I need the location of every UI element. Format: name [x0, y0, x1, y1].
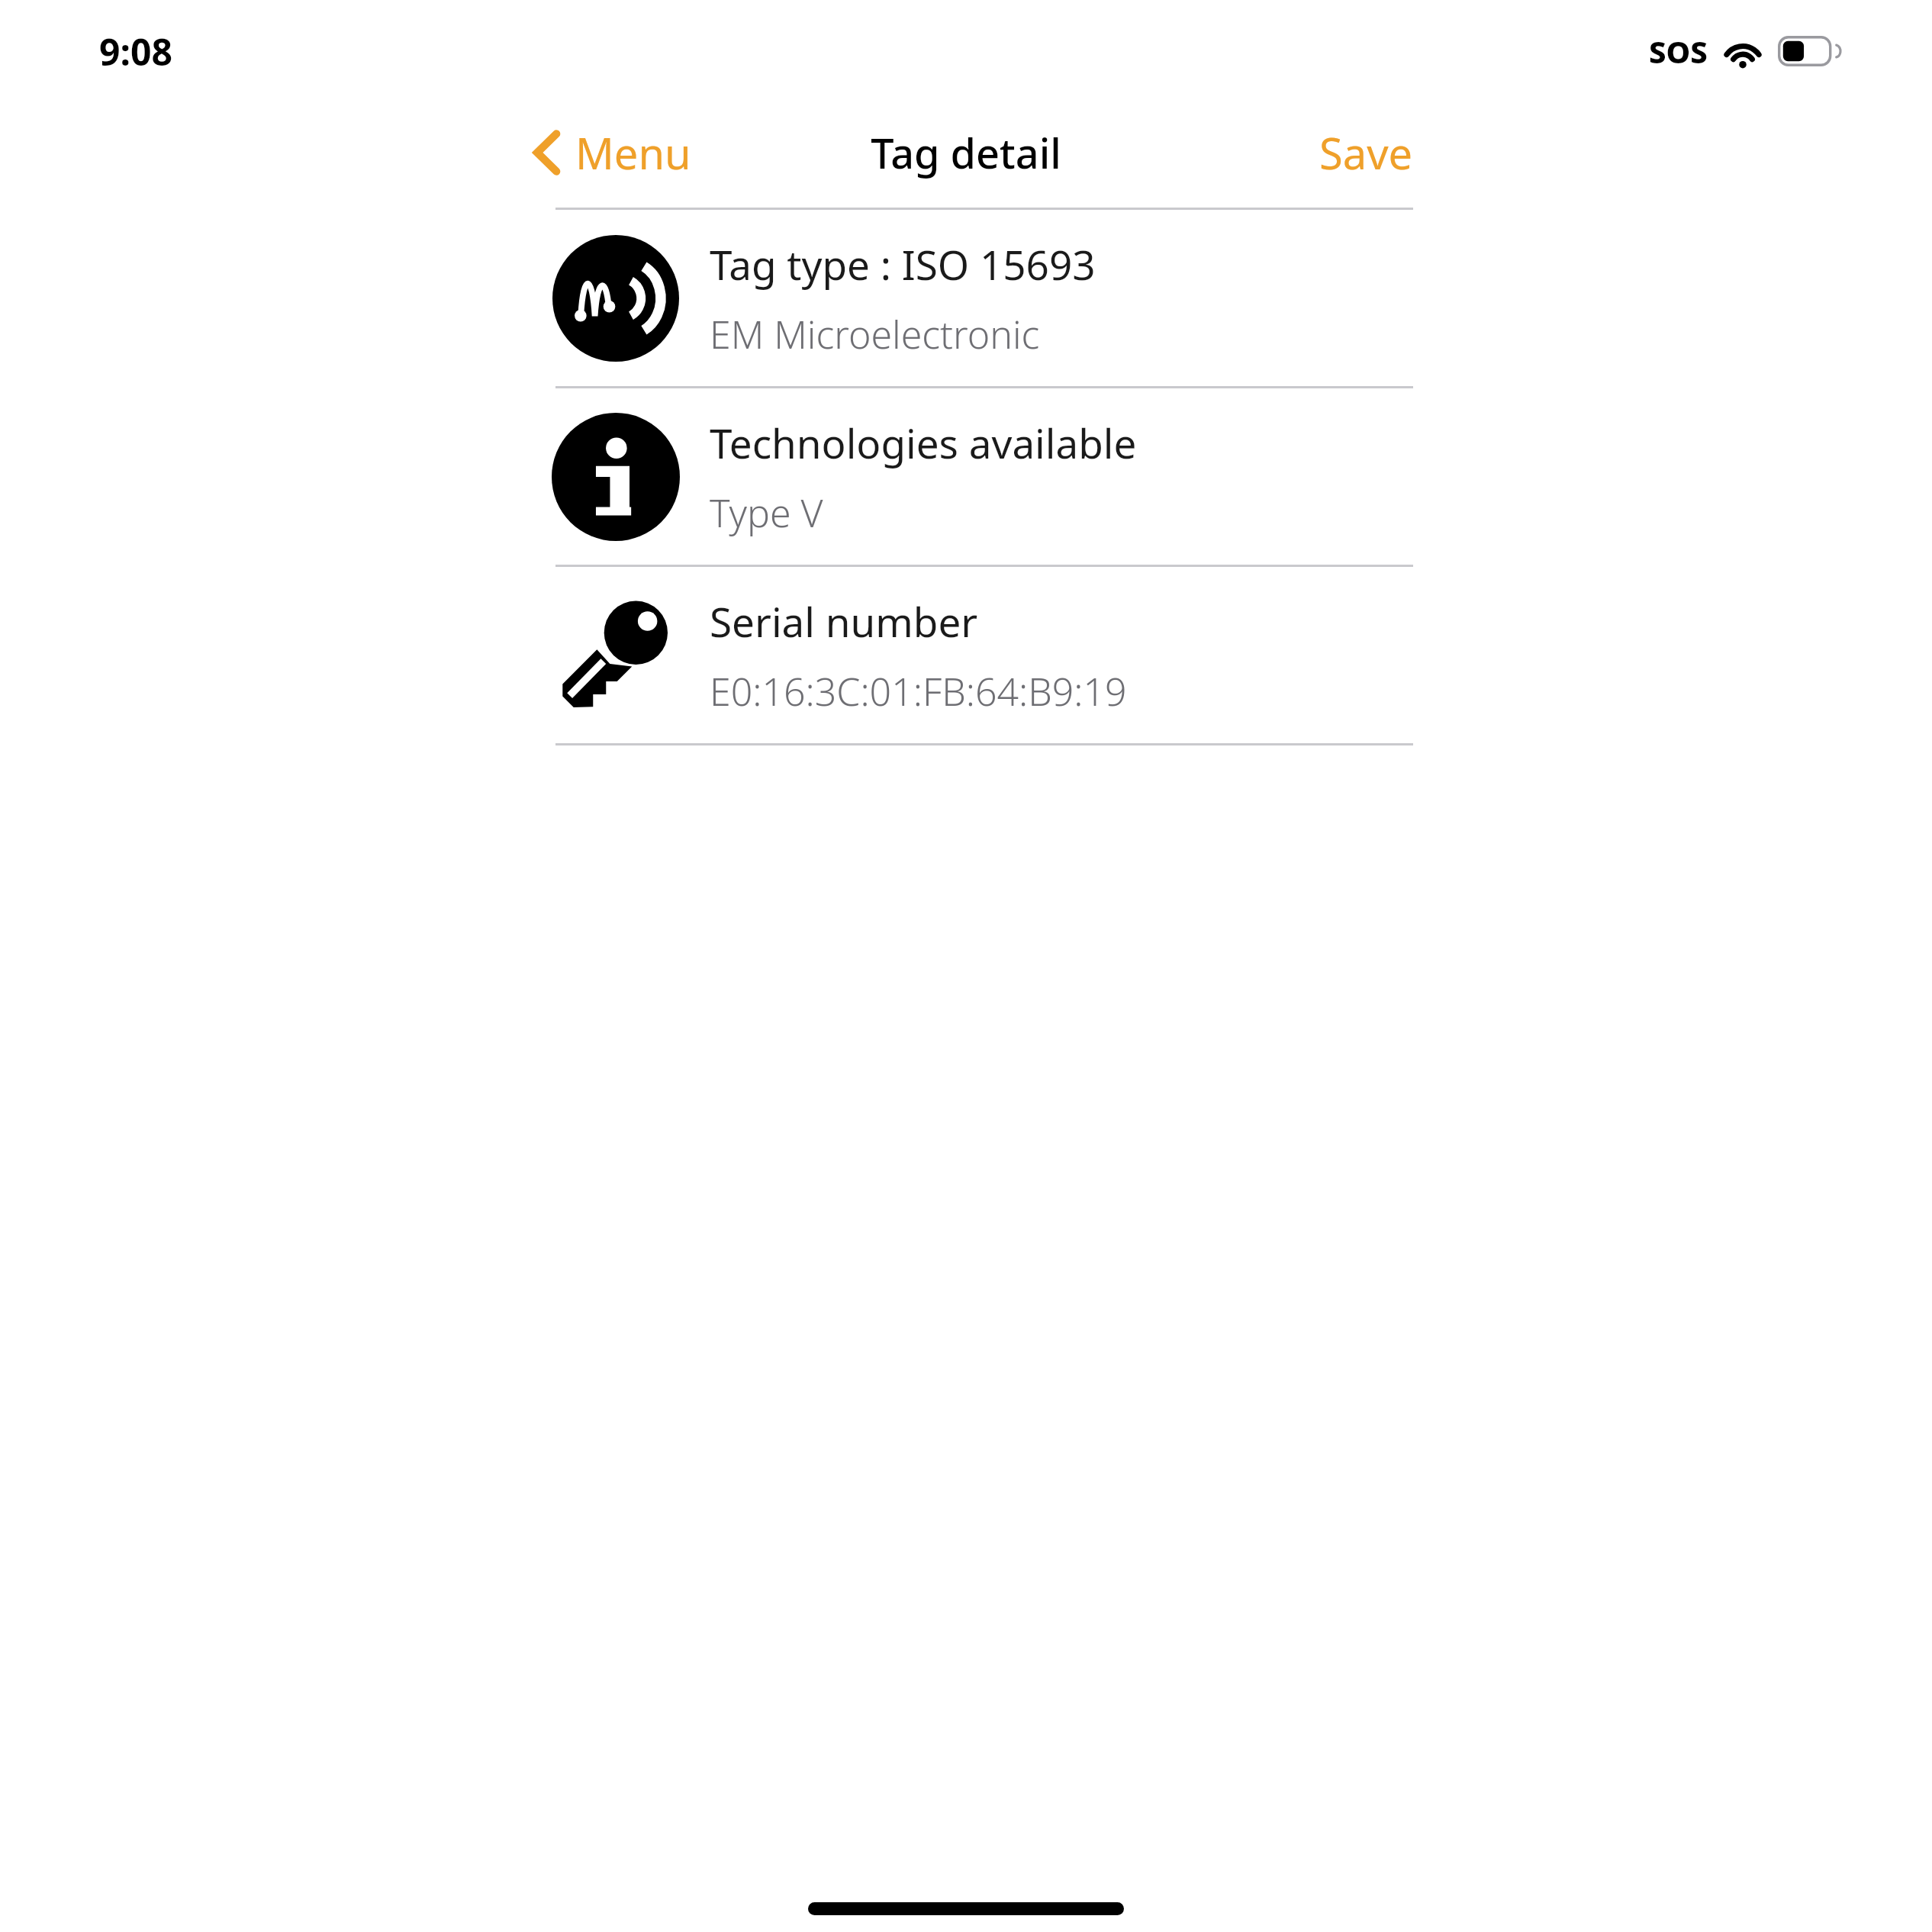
button[interactable]: Save	[1319, 124, 1413, 182]
staticText: EM Microelectronic	[710, 308, 1040, 360]
staticText: Tag type : ISO 15693	[710, 237, 1096, 291]
staticText: Menu	[575, 124, 691, 182]
staticText: 9:08	[99, 27, 172, 76]
staticText: Tag detail	[871, 124, 1061, 181]
staticText: Type V	[710, 487, 823, 539]
button[interactable]: Menu	[534, 124, 691, 182]
staticText: SOS	[1649, 31, 1708, 72]
other: Serial number key	[551, 591, 681, 720]
button[interactable]: Serial number key	[0, 567, 1932, 743]
staticText: E0:16:3C:01:FB:64:B9:19	[710, 665, 1127, 717]
staticText: Technologies available	[710, 415, 1137, 470]
button[interactable]: NFC tag	[0, 210, 1932, 386]
button[interactable]: Information	[0, 388, 1932, 565]
other: Information	[552, 413, 680, 541]
other: NFC tag	[552, 235, 679, 362]
staticText: Serial number	[710, 594, 978, 649]
